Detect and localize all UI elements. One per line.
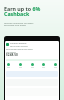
staticText: Earn on every purchase: [10, 45, 28, 47]
staticText: Your balance: [6, 51, 16, 53]
staticText: Cashback Rewards: [10, 42, 27, 45]
staticText: Earn up to 6% Cashback: [4, 5, 41, 18]
staticText: $248.50: [6, 53, 18, 57]
staticText: Total cashback earned this month: [6, 48, 33, 50]
staticText: Instant Cashback on every purchase you m…: [4, 21, 34, 27]
